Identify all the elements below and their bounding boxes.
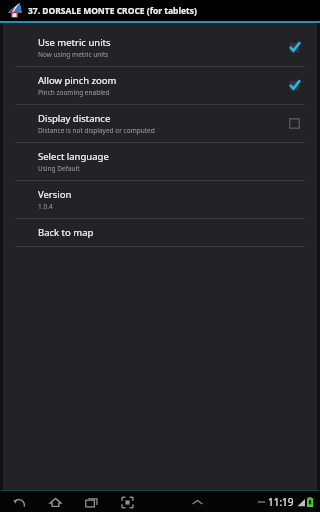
button[interactable]: 11:19 <box>256 495 315 509</box>
other: Unchecked <box>288 117 301 130</box>
button[interactable]: Version <box>3 181 317 218</box>
button[interactable]: Back <box>8 492 30 512</box>
staticText: Using Default <box>38 164 80 173</box>
staticText: 37. DORSALE MONTE CROCE (for tablets) <box>28 5 197 17</box>
other: Checked <box>288 41 301 54</box>
staticText: Version <box>38 188 72 201</box>
button[interactable]: Allow pinch zoom <box>3 67 317 104</box>
button[interactable]: Display distance <box>3 105 317 142</box>
staticText: Allow pinch zoom <box>38 74 117 87</box>
staticText: Back to map <box>38 226 94 239</box>
staticText: Pinch zooming enabled <box>38 88 110 97</box>
staticText: 1.0.4 <box>38 202 53 211</box>
staticText: Select language <box>38 150 109 163</box>
button[interactable]: Select language <box>3 143 317 180</box>
button[interactable]: Use metric units <box>3 29 317 66</box>
button[interactable]: Back to map <box>3 219 317 246</box>
button[interactable]: Home <box>44 492 66 512</box>
other: Checked <box>288 79 301 92</box>
staticText: Display distance <box>38 112 111 125</box>
staticText: Use metric units <box>38 36 111 49</box>
staticText: Now using metric units <box>38 50 109 59</box>
button[interactable]: Expand <box>185 492 209 512</box>
button[interactable]: Screenshot <box>116 492 138 512</box>
staticText: 11:19 <box>268 495 294 509</box>
staticText: Distance is not displayed or computed <box>38 126 155 135</box>
button[interactable]: Recent apps <box>80 492 102 512</box>
